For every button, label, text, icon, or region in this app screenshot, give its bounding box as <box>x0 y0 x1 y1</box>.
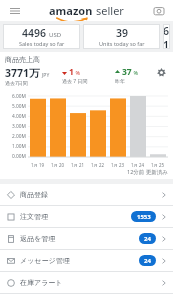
staticText: Sales today so far <box>19 40 65 47</box>
staticText: 過去 7 日間 <box>62 78 88 85</box>
staticText: USD <box>49 31 62 39</box>
staticText: amazon <box>49 3 93 18</box>
staticText: メッセージ管理 <box>20 256 70 265</box>
staticText: 1月 21 <box>71 162 85 168</box>
button[interactable]: 返品を管理 <box>0 228 173 249</box>
staticText: 5.00M <box>12 103 26 110</box>
staticText: % <box>132 69 139 76</box>
button[interactable]: 61 <box>163 24 170 49</box>
staticText: 商品登録 <box>20 190 48 199</box>
staticText: 在庫アラート <box>20 278 63 287</box>
staticText: 1月 24 <box>131 162 145 168</box>
button[interactable]: 商品登録 <box>0 184 173 205</box>
button[interactable]: メッセージ管理 <box>0 250 173 271</box>
staticText: 1月 20 <box>51 162 65 168</box>
staticText: 4496 <box>22 26 47 40</box>
staticText: 商品売上高 <box>5 55 40 64</box>
staticText: 3771万 <box>5 66 40 80</box>
staticText: % <box>74 69 81 76</box>
staticText: 6.00M <box>12 93 26 100</box>
staticText: 1.00M <box>12 143 26 150</box>
staticText: 24 <box>144 235 151 243</box>
staticText: 0.00M <box>12 153 26 160</box>
staticText: Units today so far <box>99 40 145 47</box>
staticText: 1 <box>69 66 74 78</box>
staticText: 1月 19 <box>31 162 45 168</box>
staticText: 37 <box>122 66 132 78</box>
button[interactable]: Menu <box>7 3 22 18</box>
staticText: 注文管理 <box>20 212 48 221</box>
staticText: 昨年 <box>115 78 125 84</box>
button[interactable]: Settings <box>155 66 168 79</box>
button[interactable]: 在庫アラート <box>0 272 173 293</box>
staticText: 61 <box>163 24 170 49</box>
staticText: seller <box>96 3 124 18</box>
staticText: 12分前 更新済み <box>127 168 168 176</box>
staticText: 39 <box>116 26 129 40</box>
staticText: 24 <box>144 257 151 265</box>
button[interactable]: 注文管理 <box>0 206 173 227</box>
staticText: 3.00M <box>12 123 26 130</box>
staticText: 返品を管理 <box>20 234 56 243</box>
staticText: 2.00M <box>12 133 26 140</box>
staticText: JPY <box>42 72 50 79</box>
staticText: 1553 <box>137 213 151 221</box>
staticText: 1月 23 <box>111 162 125 168</box>
staticText: 1月 25 <box>151 162 165 168</box>
button[interactable]: 4496 <box>3 24 80 49</box>
staticText: 過去7日間 <box>5 80 28 87</box>
staticText: 1月 22 <box>91 162 105 168</box>
staticText: 4.00M <box>12 113 26 120</box>
button[interactable]: Scan product <box>151 3 166 18</box>
button[interactable]: 39 <box>83 24 160 49</box>
